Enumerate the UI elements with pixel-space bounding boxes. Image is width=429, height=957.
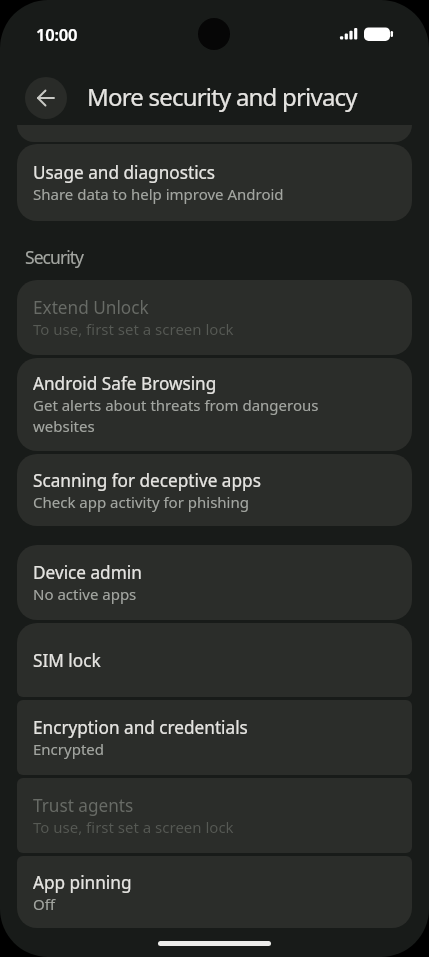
staticText: SIM lock xyxy=(33,649,101,672)
staticText: Trust agents xyxy=(33,794,134,817)
staticText: Extend Unlock xyxy=(33,296,149,319)
staticText: More security and privacy xyxy=(87,80,357,113)
staticText: Off xyxy=(33,894,363,914)
button[interactable]: Android Safe Browsing xyxy=(17,358,412,451)
staticText: To use, first set a screen lock xyxy=(33,817,363,837)
button[interactable]: Extend Unlock xyxy=(17,280,412,355)
button[interactable]: Usage and diagnostics xyxy=(17,144,412,221)
staticText: Get alerts about threats from dangerous … xyxy=(33,395,333,437)
button[interactable]: Navigate up xyxy=(25,77,67,119)
staticText: Android Safe Browsing xyxy=(33,372,217,395)
staticText: Check app activity for phishing xyxy=(33,492,363,512)
staticText: App pinning xyxy=(33,871,132,894)
button[interactable]: Scanning for deceptive apps xyxy=(17,454,412,526)
staticText: Scanning for deceptive apps xyxy=(33,469,261,492)
staticText: Security xyxy=(25,245,84,269)
staticText: Device admin xyxy=(33,561,142,584)
staticText: Encrypted xyxy=(33,739,363,759)
staticText: No active apps xyxy=(33,584,363,604)
button[interactable]: Encryption and credentials xyxy=(17,700,412,775)
button[interactable]: Device admin xyxy=(17,545,412,620)
staticText: Encryption and credentials xyxy=(33,716,248,739)
staticText: To use, first set a screen lock xyxy=(33,319,363,339)
button[interactable]: App pinning xyxy=(17,856,412,928)
button[interactable]: Trust agents xyxy=(17,778,412,853)
button[interactable]: SIM lock xyxy=(17,623,412,697)
staticText: Usage and diagnostics xyxy=(33,161,216,184)
staticText: 10:00 xyxy=(36,23,78,45)
staticText: Share data to help improve Android xyxy=(33,184,363,204)
